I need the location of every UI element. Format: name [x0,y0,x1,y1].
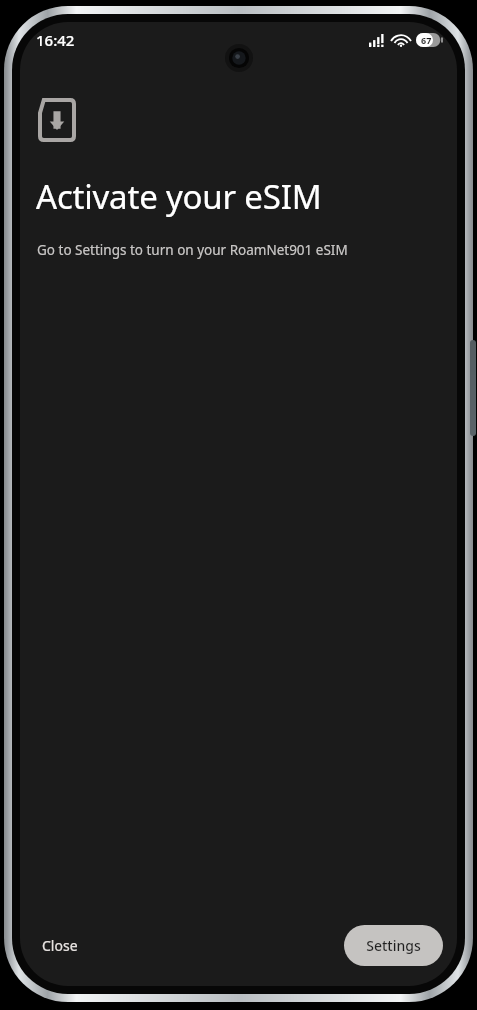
button[interactable]: Close [34,926,86,965]
staticText: 67 [421,34,432,46]
staticText: Settings [366,936,421,955]
staticText: Go to Settings to turn on your RoamNet90… [37,241,348,259]
staticText: 16:42 [36,30,75,50]
staticText: Activate your eSIM [36,174,322,219]
button[interactable]: Settings [344,925,443,966]
staticText: Close [42,936,78,955]
